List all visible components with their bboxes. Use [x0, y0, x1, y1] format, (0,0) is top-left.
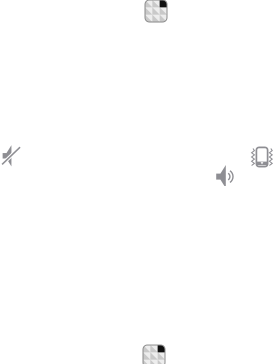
- button[interactable]: New Mail: [0, 306, 273, 346]
- staticText: Sounds & Haptics: [110, 0, 209, 48]
- button[interactable]: Vibrate on Ring: [249, 143, 273, 167]
- button[interactable]: Sent Mail: [0, 346, 273, 364]
- button[interactable]: Maximum volume: [220, 141, 249, 169]
- button[interactable]: Now Playing: [145, 0, 265, 23]
- button[interactable]: Up Next: [143, 344, 263, 364]
- button[interactable]: Mute: [0, 141, 28, 169]
